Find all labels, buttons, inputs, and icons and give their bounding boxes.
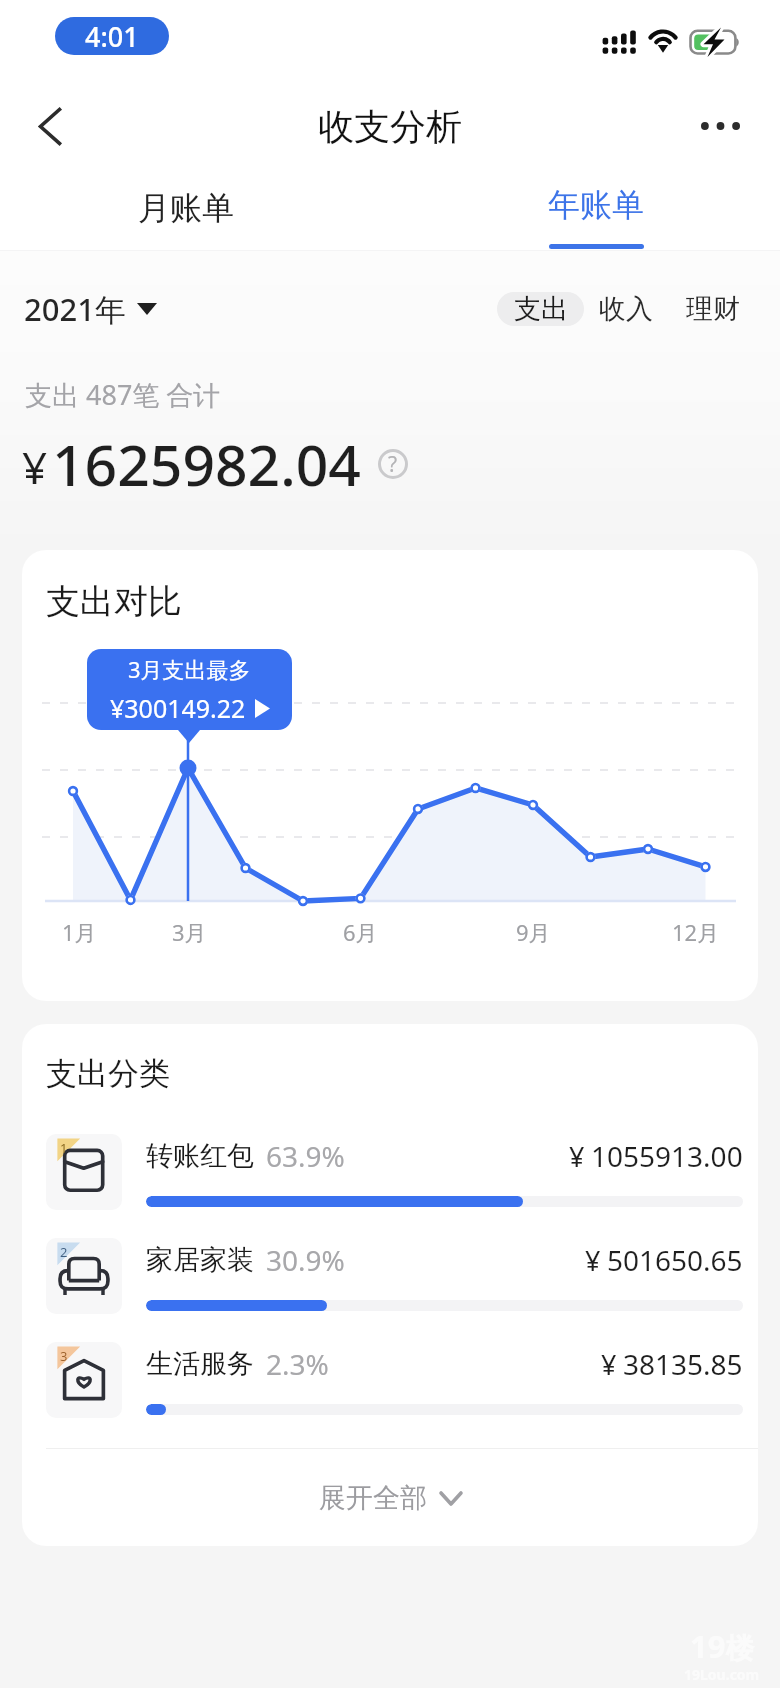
staticText: 转账红包 — [146, 1139, 254, 1173]
staticText: 家居家装 — [146, 1243, 254, 1277]
staticText: ¥ — [585, 1242, 601, 1279]
staticText: 支出 — [514, 292, 568, 326]
button[interactable]: 2 — [22, 1224, 758, 1328]
staticText: 年账单 — [548, 185, 644, 225]
button[interactable]: 1 — [22, 1120, 758, 1224]
staticText: 3月 — [172, 917, 207, 947]
staticText: 6月 — [343, 917, 378, 947]
button[interactable]: 支出 — [497, 292, 584, 326]
staticText: 63.9% — [266, 1137, 345, 1175]
button[interactable]: More options — [688, 94, 752, 158]
staticText: 1625982.04 — [52, 425, 361, 503]
button[interactable]: 月账单 — [86, 172, 286, 250]
staticText: 2021年 — [24, 288, 126, 330]
staticText: 30.9% — [266, 1241, 345, 1279]
staticText: 9月 — [516, 917, 551, 947]
staticText: ¥ — [569, 1138, 585, 1175]
staticText: 3 — [60, 1347, 68, 1365]
staticText: 支出 487笔 合计 — [25, 376, 221, 413]
button[interactable]: 年账单 — [496, 172, 696, 250]
staticText: 支出对比 — [46, 580, 182, 623]
button[interactable]: 3 — [22, 1328, 758, 1432]
staticText: 月账单 — [138, 188, 234, 228]
staticText: 2.3% — [266, 1345, 329, 1383]
staticText: 1055913.00 — [591, 1137, 743, 1175]
button[interactable]: 收入 — [593, 292, 658, 326]
button[interactable]: 2021年 — [24, 282, 157, 336]
staticText: 1月 — [62, 917, 97, 947]
staticText: 38135.85 — [623, 1345, 743, 1383]
staticText: 2 — [60, 1243, 68, 1261]
staticText: ¥ — [601, 1346, 617, 1383]
staticText: 理财 — [686, 292, 740, 326]
staticText: ¥ — [22, 437, 48, 497]
staticText: 4:01 — [85, 18, 139, 55]
staticText: 3月支出最多 — [128, 654, 251, 684]
staticText: ? — [388, 450, 398, 479]
staticText: 收入 — [599, 292, 653, 326]
staticText: 展开全部 — [319, 1481, 427, 1515]
button[interactable]: Back — [18, 94, 82, 158]
button[interactable]: 理财 — [680, 292, 745, 326]
button[interactable]: Help — [378, 449, 408, 479]
staticText: ¥300149.22 — [110, 691, 246, 725]
button[interactable]: 展开全部 — [22, 1449, 758, 1546]
staticText: 收支分析 — [318, 104, 462, 149]
staticText: 1 — [60, 1139, 68, 1157]
staticText: 生活服务 — [146, 1347, 254, 1381]
staticText: 支出分类 — [46, 1054, 170, 1093]
staticText: 12月 — [672, 917, 720, 947]
staticText: 501650.65 — [607, 1241, 743, 1279]
